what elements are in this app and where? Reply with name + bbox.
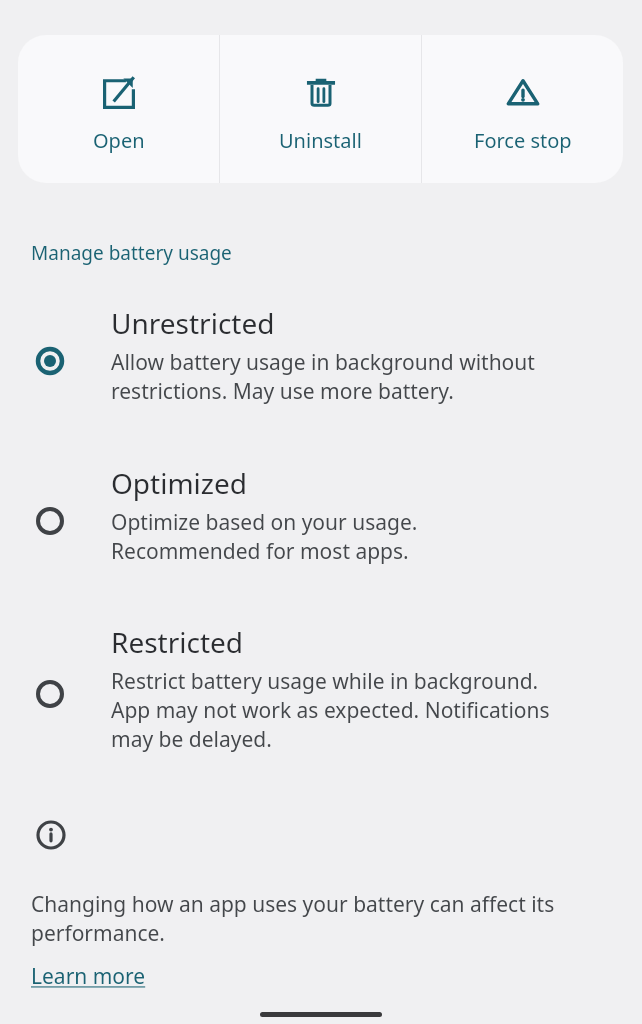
button[interactable]: Restricted [0,619,642,769]
staticText: may be delayed. [111,725,272,754]
staticText: Recommended for most apps. [111,537,409,566]
staticText: Unrestricted [111,304,275,342]
staticText: Uninstall [279,127,362,154]
button[interactable]: Optimized [0,460,642,590]
staticText: restrictions. May use more battery. [111,377,454,406]
staticText: Changing how an app uses your battery ca… [31,890,555,919]
staticText: Optimized [111,464,247,502]
button[interactable]: Learn more [31,962,146,991]
staticText: Restricted [111,623,244,661]
button[interactable]: Force stop [422,35,623,183]
staticText: Optimize based on your usage. [111,508,418,537]
staticText: Allow battery usage in background withou… [111,348,535,377]
staticText: Force stop [474,127,572,154]
button[interactable]: Unrestricted [0,300,642,430]
button[interactable]: Uninstall [220,35,421,183]
staticText: Open [93,127,145,154]
staticText: performance. [31,919,165,948]
button[interactable]: Open [18,35,219,183]
staticText: Restrict battery usage while in backgrou… [111,667,539,696]
staticText: Learn more [31,962,146,991]
staticText: Manage battery usage [31,240,232,266]
staticText: App may not work as expected. Notificati… [111,696,550,725]
